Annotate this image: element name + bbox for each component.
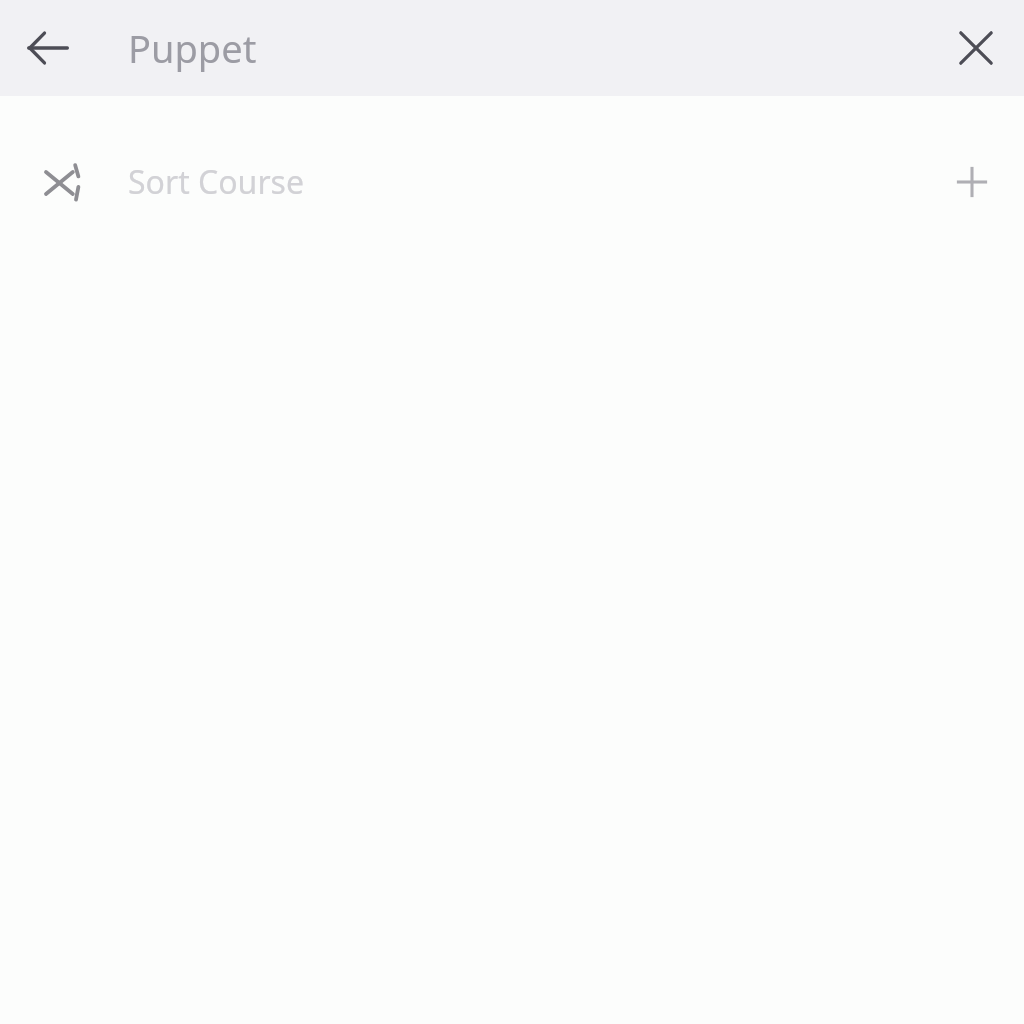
button[interactable]: Back [0, 0, 96, 96]
staticText: Puppet [128, 22, 257, 74]
staticText: Sort Course [128, 160, 920, 204]
button[interactable]: Sort Course [0, 134, 1024, 230]
button[interactable]: Close [928, 0, 1024, 96]
button[interactable]: Add [920, 134, 1024, 230]
